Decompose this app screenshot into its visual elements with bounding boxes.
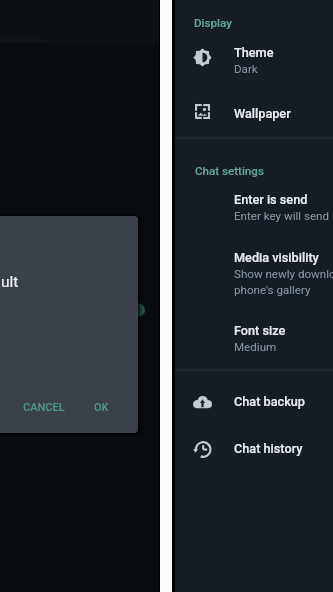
staticText: Theme (234, 45, 274, 60)
button[interactable]: Wallpaper (175, 104, 333, 134)
button[interactable]: Chat backup (175, 392, 333, 422)
staticText: Show newly downloaded media in your phon… (234, 267, 333, 297)
staticText: OK (94, 401, 109, 414)
staticText: Display (194, 16, 232, 30)
button[interactable]: Font size (175, 321, 333, 367)
staticText: Chat backup (234, 394, 305, 409)
staticText: System default (0, 273, 19, 291)
staticText: Enter is send (234, 192, 308, 207)
other: Wallpaper (193, 102, 212, 121)
staticText: Chat settings (195, 164, 264, 178)
staticText: Font size (234, 323, 286, 338)
button[interactable]: Chat history (175, 439, 333, 469)
other: Chat history (193, 440, 212, 459)
staticText: Wallpaper (234, 106, 291, 121)
staticText: Dark (234, 62, 258, 76)
button[interactable]: CANCEL (17, 398, 59, 420)
button[interactable]: Enter is send (175, 190, 333, 236)
button[interactable]: Theme (175, 43, 333, 89)
other: Theme (193, 48, 212, 67)
other: Chat backup (193, 393, 212, 412)
button[interactable]: Media visibility (175, 248, 333, 310)
staticText: CANCEL (23, 401, 65, 414)
staticText: Media visibility (234, 250, 319, 265)
staticText: Chat history (234, 441, 303, 456)
staticText: Enter key will send (234, 209, 330, 223)
button[interactable]: OK (88, 398, 103, 420)
staticText: Medium (234, 340, 277, 354)
